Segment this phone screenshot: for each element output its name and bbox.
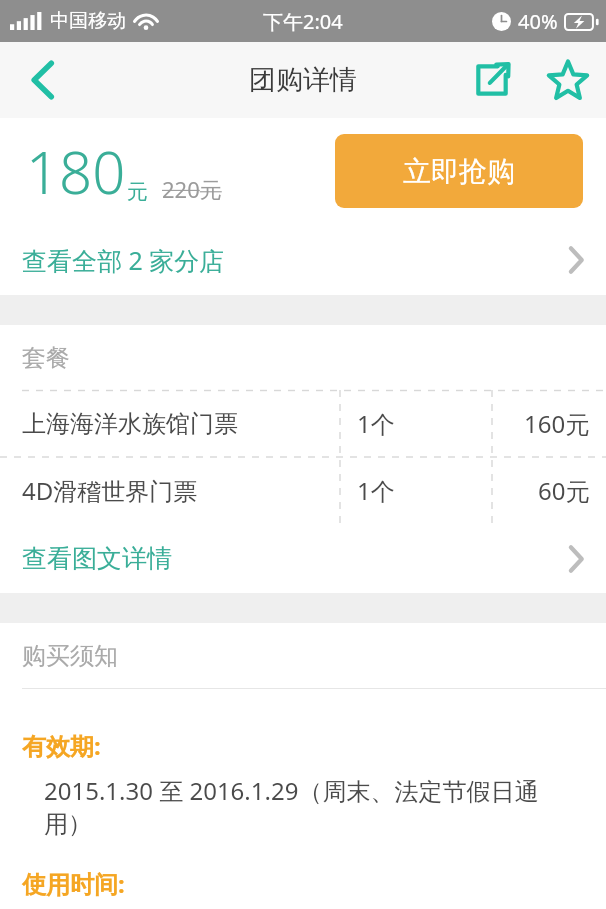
staticText: 4D滑稽世界门票 (22, 474, 198, 507)
staticText: 查看图文详情 (22, 543, 172, 574)
staticText: 使用时间: (22, 867, 125, 900)
button[interactable]: Back (0, 42, 86, 118)
staticText: 中国移动 (50, 9, 126, 33)
staticText: 2015.1.30 至 2016.1.29（周末、法定节假日通用） (44, 774, 586, 839)
staticText: 220元 (162, 174, 222, 204)
staticText: 购买须知 (22, 641, 118, 671)
button[interactable]: 查看全部 2 家分店 (0, 224, 606, 295)
staticText: 查看全部 2 家分店 (22, 243, 225, 277)
staticText: 有效期: (22, 729, 101, 762)
staticText: 60元 (538, 474, 590, 507)
button[interactable]: 立即抢购 (335, 134, 583, 208)
staticText: 上海海洋水族馆门票 (22, 409, 238, 439)
staticText: 元 (127, 179, 148, 205)
staticText: 套餐 (22, 343, 70, 373)
staticText: 40% (518, 8, 558, 35)
button[interactable]: Share (454, 42, 530, 118)
button[interactable]: Favorite (530, 42, 606, 118)
staticText: 下午2:04 (263, 8, 343, 35)
staticText: 团购详情 (249, 63, 357, 97)
staticText: 160元 (524, 407, 590, 440)
button[interactable]: 查看图文详情 (0, 524, 606, 593)
staticText: 1个 (357, 407, 395, 440)
staticText: 1个 (357, 474, 395, 507)
staticText: 180 (26, 132, 126, 211)
staticText: 立即抢购 (403, 154, 515, 189)
